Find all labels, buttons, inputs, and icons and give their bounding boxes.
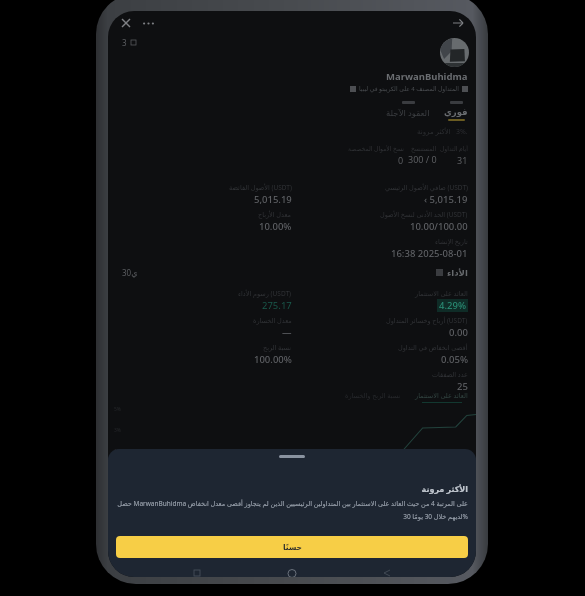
staticText: الحد الأدنى لنسخ الأصول (USDT) (380, 210, 468, 219)
staticText: فوري (444, 107, 468, 117)
staticText: 25 (457, 380, 468, 393)
staticText: MarwanBuhidma (386, 70, 468, 83)
staticText: 16:38 2025-08-01 (391, 247, 468, 260)
staticText: 100.00% (254, 353, 292, 366)
staticText: أيام التداول (440, 145, 468, 153)
staticText: معدل الأرباح (258, 210, 292, 219)
staticText: حسنًا (283, 543, 302, 552)
button[interactable]: حسنًا (116, 536, 468, 558)
button[interactable]: Forward (450, 15, 466, 31)
staticText: نسبة الربح (263, 343, 292, 352)
staticText: عدد الصفقات (432, 370, 468, 379)
staticText: صافي الأصول الرئيسي (USDT) (385, 183, 468, 192)
staticText: 31 (457, 154, 468, 166)
staticText: المتداول المصنف 4 على الكريبتو في ليبيا (359, 85, 459, 93)
staticText: 0.00 (449, 326, 468, 339)
staticText: رسوم الأداء (USDT) (238, 289, 292, 298)
staticText: الأداء (447, 268, 468, 278)
staticText: 3% (114, 427, 122, 434)
staticText: نسبة الربح والخسارة (345, 391, 401, 400)
staticText: المستنسخ (411, 145, 437, 152)
button[interactable]: العائد على الاستثمار (415, 391, 468, 403)
staticText: ي30 (122, 267, 138, 278)
button[interactable]: Back (381, 570, 393, 577)
staticText: 3%. (456, 127, 468, 137)
staticText: 10.00% (259, 220, 292, 233)
staticText: أقصى انخفاض في التداول (398, 343, 468, 352)
staticText: 10.00/100.00 (410, 220, 468, 233)
button[interactable]: نسبة الربح والخسارة (345, 391, 401, 400)
staticText: 5% (114, 406, 122, 413)
staticText: 0 (398, 154, 404, 166)
staticText: 4.29% (439, 299, 466, 312)
staticText: العائد على الاستثمار (415, 289, 468, 298)
staticText: تاريخ الإنشاء (435, 237, 468, 246)
staticText: الأكثر مرونة (417, 127, 451, 137)
button[interactable]: Recents (191, 570, 203, 577)
staticText: الأكثر مرونة (116, 483, 468, 494)
staticText: العقود الآجلة (386, 107, 430, 119)
staticText: الأصول الفائضة (USDT) (229, 183, 292, 192)
staticText: 5,015.19 (254, 193, 292, 206)
staticText: 0.05% (441, 353, 468, 366)
staticText: ‹ 5,015.19 (424, 193, 468, 206)
staticText: نسخ الأموال المخصصة (348, 145, 404, 153)
button[interactable]: Home (286, 570, 298, 577)
staticText: حصل MarwanBuhidma على المرتبة 4 من حيث ا… (116, 499, 468, 521)
staticText: أرباح وخسائر المتداول (USDT) (386, 316, 468, 325)
staticText: 1% (114, 448, 122, 454)
button[interactable]: Close (118, 15, 134, 31)
button[interactable]: Profile picture (440, 38, 469, 67)
staticText: العائد على الاستثمار (415, 391, 468, 400)
button[interactable]: فوري (444, 101, 468, 121)
button[interactable]: More options (140, 15, 156, 31)
button[interactable]: العقود الآجلة (386, 101, 430, 123)
staticText: — (282, 326, 292, 339)
staticText: معدل الخسارة (253, 316, 292, 325)
staticText: 300 / 0 (408, 153, 437, 165)
staticText: 275.17 (262, 299, 292, 312)
staticText: 3 (122, 37, 127, 48)
